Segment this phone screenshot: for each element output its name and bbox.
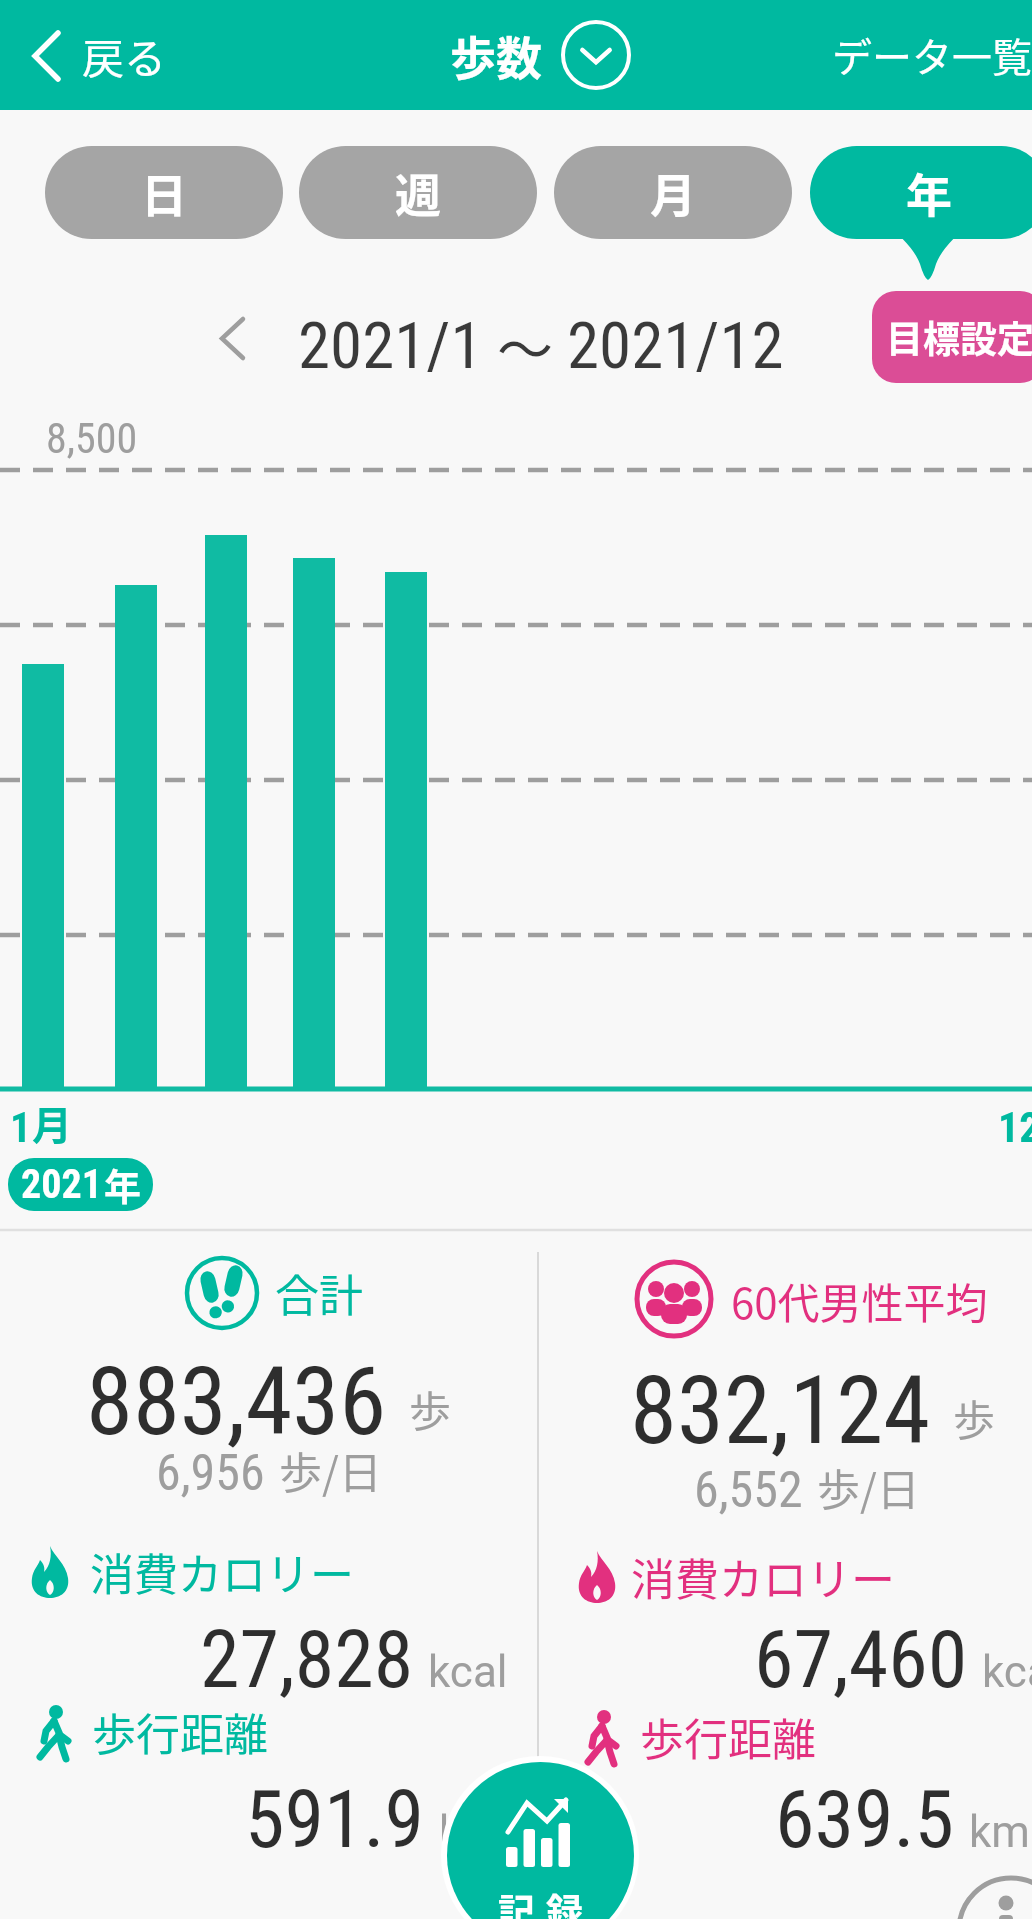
- staticText: 12: [998, 1103, 1032, 1152]
- button[interactable]: 月: [554, 146, 792, 239]
- staticText: 60代男性平均: [731, 1270, 988, 1331]
- button[interactable]: 歩数: [450, 19, 632, 91]
- staticText: 27,828: [200, 1613, 414, 1707]
- staticText: 年: [104, 1158, 141, 1211]
- staticText: 67,460: [754, 1613, 968, 1707]
- staticText: 記: [498, 1883, 535, 1919]
- staticText: 戻る: [82, 25, 167, 86]
- staticText: 月: [650, 159, 696, 226]
- staticText: 2021/12: [567, 308, 784, 384]
- staticText: 録: [546, 1883, 583, 1919]
- staticText: 歩行距離: [92, 1700, 268, 1764]
- button[interactable]: 年: [810, 146, 1032, 239]
- staticText: 週: [395, 159, 441, 226]
- staticText: kcal: [428, 1646, 508, 1698]
- staticText: 6,552: [694, 1461, 803, 1520]
- staticText: 合計: [275, 1261, 363, 1325]
- staticText: 832,124: [630, 1355, 931, 1466]
- staticText: 2021: [21, 1161, 102, 1208]
- staticText: 消費カロリー: [631, 1545, 895, 1609]
- button[interactable]: 日: [45, 146, 283, 239]
- staticText: 歩行距離: [640, 1705, 816, 1769]
- staticText: ～: [497, 305, 553, 386]
- button[interactable]: データ一覧: [832, 26, 1032, 84]
- button[interactable]: 週: [299, 146, 537, 239]
- staticText: 2021/1: [298, 308, 483, 384]
- staticText: 639.5: [775, 1773, 955, 1867]
- staticText: 歩/日: [817, 1456, 920, 1518]
- staticText: 日: [141, 159, 187, 226]
- staticText: 月: [32, 1094, 72, 1152]
- staticText: 歩: [409, 1378, 452, 1439]
- staticText: 歩: [953, 1387, 996, 1448]
- staticText: 591.9: [245, 1773, 425, 1867]
- button[interactable]: 目標設定: [872, 291, 1032, 383]
- staticText: 目標設定: [886, 310, 1032, 364]
- button[interactable]: 記: [447, 1762, 634, 1919]
- staticText: 1: [10, 1103, 32, 1152]
- staticText: km: [969, 1806, 1030, 1858]
- staticText: 年: [906, 159, 952, 226]
- staticText: 6,956: [156, 1444, 265, 1503]
- button[interactable]: 2021/1: [298, 305, 784, 386]
- staticText: kcal: [982, 1646, 1032, 1698]
- staticText: 歩数: [450, 22, 542, 89]
- staticText: 歩/日: [279, 1439, 382, 1501]
- staticText: km: [439, 1806, 500, 1858]
- staticText: 消費カロリー: [90, 1540, 354, 1604]
- staticText: 883,436: [86, 1346, 387, 1457]
- staticText: 8,500: [46, 414, 138, 463]
- button[interactable]: 戻る: [32, 25, 167, 86]
